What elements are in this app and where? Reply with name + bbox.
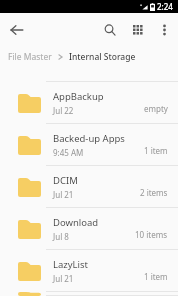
staticText: Internal Storage (69, 51, 136, 63)
staticText: LazyList (53, 258, 89, 271)
button[interactable]: Search (97, 17, 123, 43)
button[interactable]: Back (4, 17, 30, 43)
button[interactable] (0, 68, 178, 82)
staticText: AppBackup (53, 90, 104, 103)
button[interactable]: LazyList (0, 250, 178, 292)
button[interactable]: Internal Storage (67, 49, 138, 65)
button[interactable]: File Master (6, 49, 54, 65)
staticText: Jul 21 (53, 189, 74, 200)
staticText: 10 items (135, 229, 168, 240)
staticText: DCIM (53, 174, 78, 187)
staticText: 1 item (144, 145, 168, 156)
staticText: LOST.DIR (53, 292, 94, 296)
button[interactable]: Download (0, 208, 178, 250)
button[interactable]: Grid view (125, 17, 151, 43)
staticText: empty (144, 103, 168, 114)
button[interactable]: More options (152, 18, 176, 42)
staticText: File Master (8, 51, 52, 63)
staticText: 2 items (140, 187, 168, 198)
staticText: Jul 22 (53, 105, 74, 116)
staticText: Jul 21 (53, 273, 74, 284)
button[interactable]: AppBackup (0, 82, 178, 124)
button[interactable]: Backed-up Apps (0, 124, 178, 166)
staticText: 2:24 (157, 1, 173, 12)
staticText: Download (53, 216, 99, 229)
staticText: Backed-up Apps (53, 132, 125, 145)
staticText: 1 item (144, 271, 168, 282)
button[interactable]: DCIM (0, 166, 178, 208)
staticText: Jul 8 (53, 231, 69, 242)
button[interactable]: LOST.DIR (0, 292, 178, 296)
staticText: 9:45 AM (53, 147, 84, 158)
